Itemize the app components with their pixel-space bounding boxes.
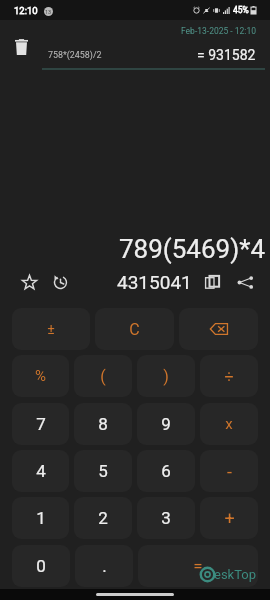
staticText: eskTop (214, 567, 257, 582)
button[interactable]: 1 (12, 497, 69, 539)
staticText: 758*(2458)/2 (48, 50, 102, 60)
button[interactable]: ( (74, 355, 132, 397)
staticText: 4 (36, 461, 46, 481)
staticText: % (35, 367, 46, 385)
staticText: x (225, 415, 233, 433)
button[interactable]: 0 (12, 545, 70, 587)
button[interactable]: Copy (202, 272, 223, 293)
button[interactable]: + (200, 497, 258, 539)
staticText: . (102, 556, 107, 576)
button[interactable]: = (138, 545, 258, 587)
staticText: 12:10 (14, 5, 38, 16)
staticText: 0 (36, 556, 46, 576)
staticText: 3 (161, 508, 171, 528)
staticText: 9 (161, 414, 171, 434)
button[interactable]: Favourite (18, 272, 40, 293)
staticText: 6 (161, 461, 171, 481)
button[interactable]: C (95, 308, 174, 350)
staticText: - (227, 461, 232, 482)
button[interactable]: 2 (74, 497, 132, 539)
button[interactable]: - (200, 450, 258, 492)
button[interactable]: 8 (74, 403, 132, 445)
staticText: ± (47, 321, 55, 337)
button[interactable]: Backspace (179, 308, 258, 350)
button[interactable]: x (200, 403, 258, 445)
button[interactable]: History (49, 272, 71, 293)
staticText: 4315041 (117, 271, 192, 293)
button[interactable]: % (12, 355, 69, 397)
button[interactable]: Delete history (12, 38, 30, 56)
button[interactable]: ÷ (200, 355, 258, 397)
staticText: + (224, 508, 235, 529)
staticText: 45% (233, 5, 249, 15)
button[interactable]: 6 (137, 450, 195, 492)
button[interactable]: ) (137, 355, 195, 397)
staticText: = 931582 (197, 47, 256, 63)
button[interactable]: 3 (137, 497, 195, 539)
staticText: ) (163, 367, 169, 386)
staticText: 8 (98, 414, 108, 434)
button[interactable]: . (75, 545, 133, 587)
staticText: 13 (45, 9, 52, 15)
button[interactable]: 5 (74, 450, 132, 492)
button[interactable]: Share (234, 272, 256, 293)
button[interactable]: 7 (12, 403, 69, 445)
staticText: Feb-13-2025 - 12:10 (181, 26, 256, 36)
staticText: 2 (98, 508, 108, 528)
staticText: 789(5469)*4 (0, 234, 265, 264)
staticText: ÷ (224, 367, 234, 386)
button[interactable]: ± (12, 308, 90, 350)
staticText: 1 (36, 508, 46, 528)
staticText: = (193, 556, 203, 576)
staticText: 7 (36, 414, 46, 434)
staticText: C (129, 320, 140, 339)
button[interactable]: 4 (12, 450, 69, 492)
button[interactable]: 9 (137, 403, 195, 445)
staticText: ( (100, 367, 106, 386)
staticText: 5 (98, 461, 108, 481)
